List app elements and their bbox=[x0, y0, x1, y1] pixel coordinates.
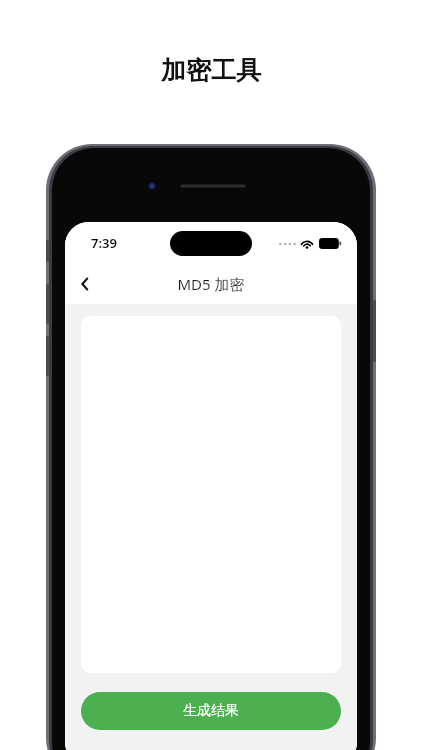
button[interactable]: 生成结果 bbox=[81, 692, 341, 730]
button[interactable]: Back bbox=[65, 264, 105, 304]
staticText: 加密工具 bbox=[161, 55, 261, 86]
staticText: 生成结果 bbox=[183, 702, 239, 720]
staticText: MD5 加密 bbox=[177, 274, 245, 294]
staticText: 7:39 bbox=[91, 234, 117, 252]
